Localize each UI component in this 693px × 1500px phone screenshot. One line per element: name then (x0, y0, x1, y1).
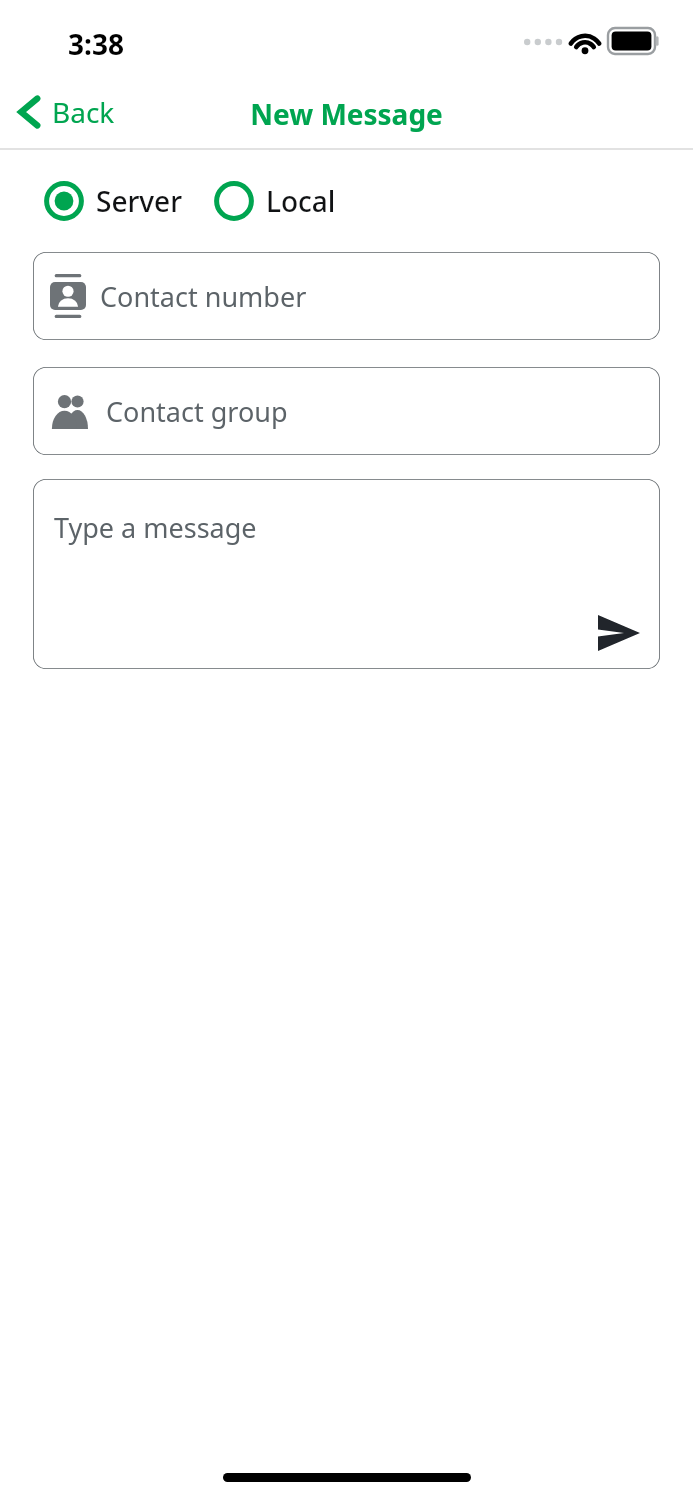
button[interactable]: Local (212, 175, 338, 227)
staticText: Server (96, 182, 182, 220)
button[interactable]: Type a message (33, 479, 660, 669)
button[interactable]: Send message (589, 603, 649, 663)
staticText: Type a message (54, 509, 257, 546)
staticText: Contact group (106, 393, 288, 430)
button[interactable]: Back (0, 85, 129, 139)
staticText: Contact number (100, 278, 307, 315)
button[interactable]: Server (42, 175, 184, 227)
button[interactable]: Contact number (33, 252, 660, 340)
button[interactable]: Contact group (33, 367, 660, 455)
staticText: Local (266, 182, 336, 220)
staticText: Back (52, 93, 115, 131)
staticText: 3:38 (68, 25, 124, 63)
staticText: New Message (0, 95, 693, 133)
